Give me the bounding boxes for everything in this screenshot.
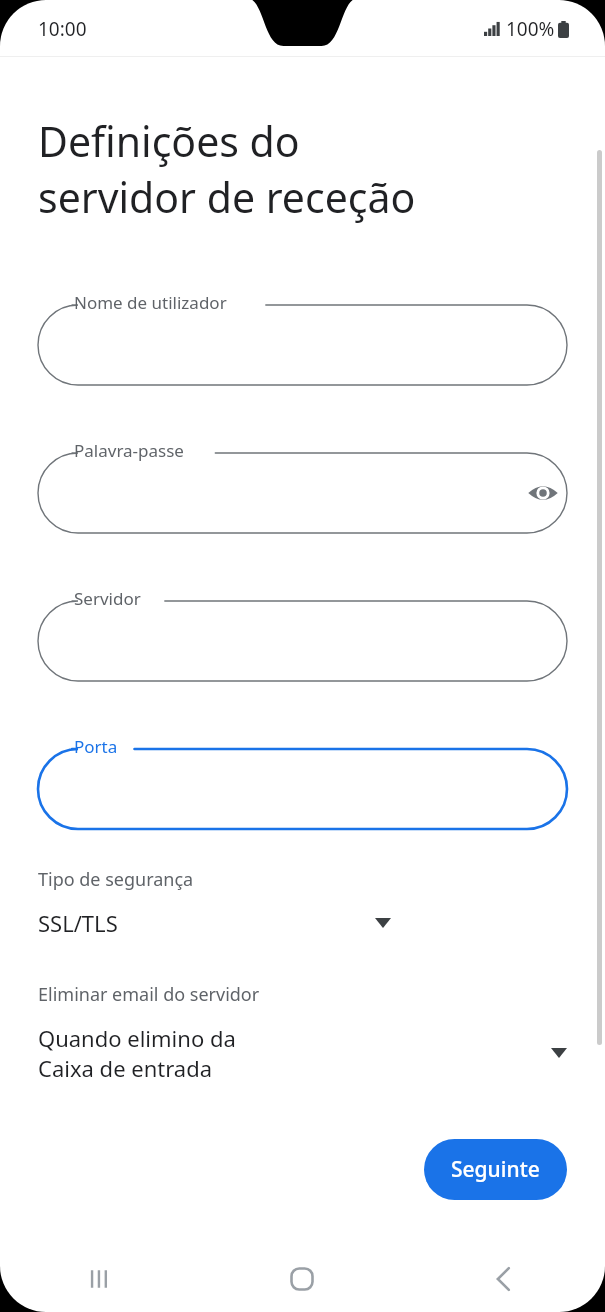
staticText: Nome de utilizador	[74, 291, 227, 314]
button[interactable]: Porta	[38, 735, 567, 829]
button[interactable]: Servidor	[38, 587, 567, 681]
staticText: Quando elimino da Caixa de entrada	[38, 1023, 294, 1083]
button[interactable]: Eliminar email do servidor	[0, 982, 605, 1083]
button[interactable]: Recents	[0, 1246, 201, 1312]
button[interactable]: Nome de utilizador	[38, 291, 567, 385]
staticText: 10:00	[38, 16, 87, 42]
button[interactable]: Back	[403, 1246, 605, 1312]
staticText: Palavra-passe	[74, 439, 184, 462]
button[interactable]: Seguinte	[424, 1139, 567, 1200]
staticText: Servidor	[74, 587, 141, 610]
staticText: Seguinte	[451, 1155, 540, 1184]
staticText: Eliminar email do servidor	[38, 982, 260, 1007]
staticText: Tipo de segurança	[38, 867, 194, 892]
button[interactable]: Mostrar palavra-passe	[519, 469, 567, 517]
button[interactable]: Tipo de segurança	[0, 867, 605, 938]
staticText: SSL/TLS	[38, 908, 118, 938]
button[interactable]: Home	[201, 1246, 403, 1312]
staticText: 100%	[506, 16, 555, 42]
staticText: servidor de receção	[38, 169, 416, 225]
staticText: Definições do	[38, 113, 300, 169]
button[interactable]: Palavra-passe	[38, 439, 567, 533]
staticText: Porta	[74, 735, 118, 758]
